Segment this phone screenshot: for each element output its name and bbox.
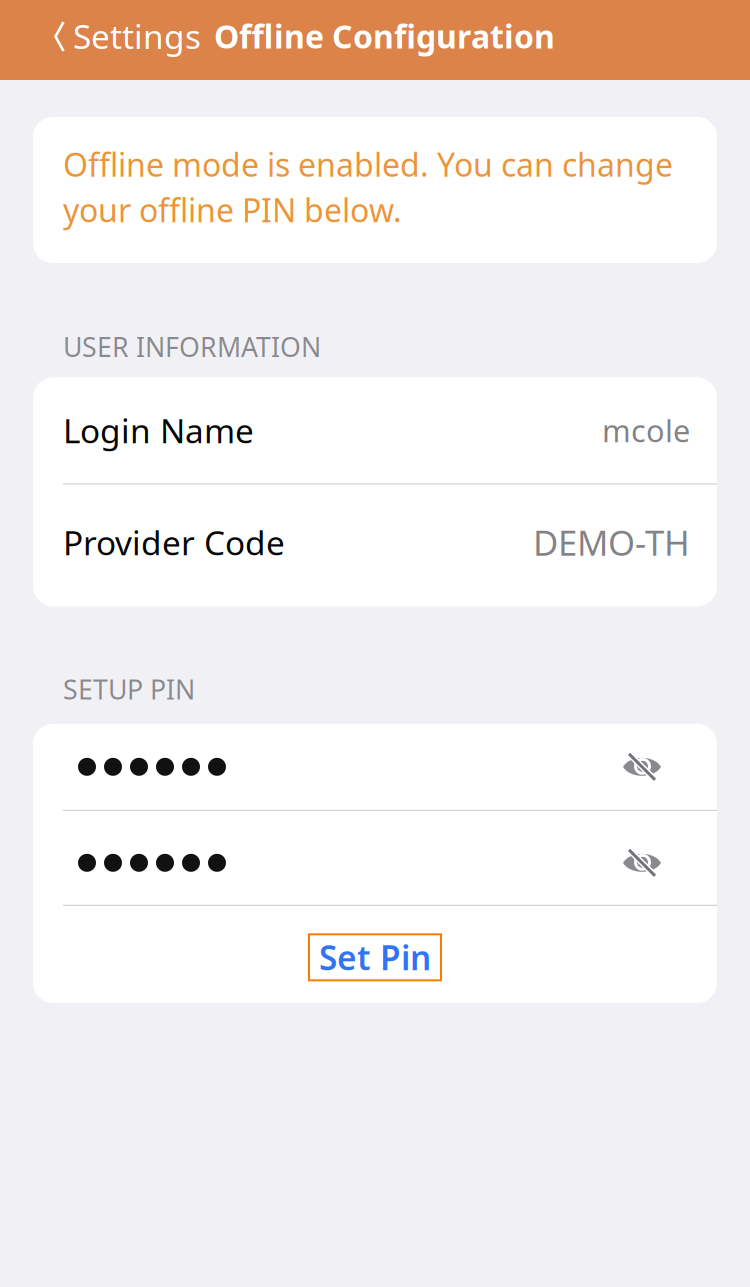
staticText: Offline mode is enabled. You can change … [63, 143, 673, 231]
button[interactable]: Back to Settings [54, 10, 201, 70]
button[interactable]: Provider Code [33, 484, 717, 606]
staticText: Offline Configuration [214, 15, 555, 57]
button[interactable]: Login Name [33, 377, 717, 483]
button[interactable]: Show PIN [606, 742, 678, 792]
staticText: Login Name [63, 408, 254, 453]
button[interactable]: Show PIN [606, 838, 678, 888]
staticText: mcole [602, 410, 690, 451]
button[interactable]: Set Pin [309, 934, 441, 980]
staticText: DEMO-TH [533, 519, 690, 565]
staticText: SETUP PIN [63, 671, 195, 707]
staticText: USER INFORMATION [63, 329, 321, 364]
staticText: Set Pin [319, 935, 431, 979]
staticText: Settings [73, 14, 201, 58]
staticText: Provider Code [63, 520, 285, 565]
